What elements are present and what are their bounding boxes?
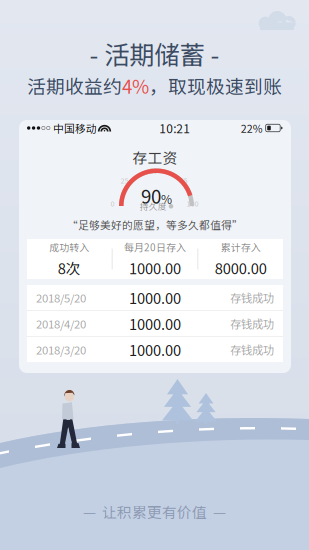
- staticText: 存工资: [132, 146, 177, 168]
- staticText: 10:21: [159, 119, 190, 137]
- staticText: 4%: [122, 72, 149, 99]
- staticText: ，取现极速到账: [149, 72, 282, 99]
- staticText: - 活期储蓄 -: [89, 35, 219, 72]
- staticText: 90: [141, 182, 161, 209]
- staticText: 1000.00: [129, 313, 181, 334]
- staticText: 25: [120, 175, 128, 186]
- staticText: 0: [110, 198, 114, 209]
- staticText: 成功转入: [49, 240, 89, 254]
- staticText: 1000.00: [129, 287, 181, 308]
- staticText: 2018/4/20: [36, 315, 86, 332]
- staticText: 1000.00: [129, 339, 181, 360]
- staticText: 存钱成功: [230, 289, 274, 306]
- staticText: 存钱成功: [230, 315, 274, 332]
- staticText: 75: [179, 175, 187, 186]
- staticText: — 让积累更有价值 —: [83, 501, 226, 522]
- staticText: 存钱成功: [230, 341, 274, 358]
- staticText: 2018/3/20: [36, 341, 86, 358]
- staticText: 中国移动: [53, 120, 97, 136]
- button[interactable]: 2018/3/20: [27, 337, 283, 362]
- staticText: 8次: [58, 257, 81, 278]
- staticText: 1000.00: [129, 257, 181, 278]
- staticText: “足够美好的愿望，等多久都值得”: [67, 217, 243, 232]
- staticText: 22%: [241, 120, 263, 136]
- staticText: 8000.00: [215, 257, 267, 278]
- staticText: 累计存入: [221, 240, 261, 254]
- staticText: 2018/5/20: [36, 289, 86, 306]
- staticText: 50: [149, 165, 157, 176]
- staticText: 100: [186, 198, 198, 209]
- staticText: 活期收益约: [27, 72, 122, 99]
- staticText: 每月20日存入: [124, 240, 186, 254]
- button[interactable]: 2018/5/20: [27, 285, 283, 310]
- button[interactable]: 2018/4/20: [27, 311, 283, 336]
- staticText: %: [161, 190, 172, 208]
- staticText: 持久度: [140, 200, 167, 212]
